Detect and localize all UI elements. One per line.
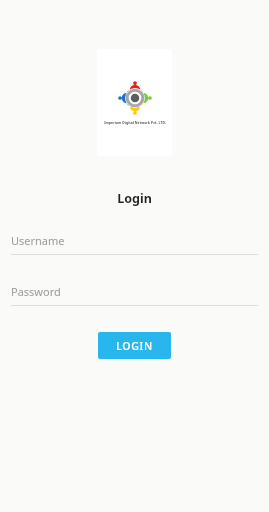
other: Imperium Digital Network logo bbox=[118, 81, 152, 115]
staticText: Login bbox=[117, 190, 152, 207]
button[interactable]: LOGIN bbox=[98, 332, 171, 359]
button[interactable]: Username bbox=[11, 233, 258, 255]
staticText: Imperium Digital Network Pvt. LTD. bbox=[104, 120, 166, 125]
button[interactable]: Password bbox=[11, 284, 258, 306]
staticText: Username bbox=[11, 233, 65, 248]
staticText: LOGIN bbox=[116, 339, 153, 353]
staticText: Password bbox=[11, 284, 61, 299]
